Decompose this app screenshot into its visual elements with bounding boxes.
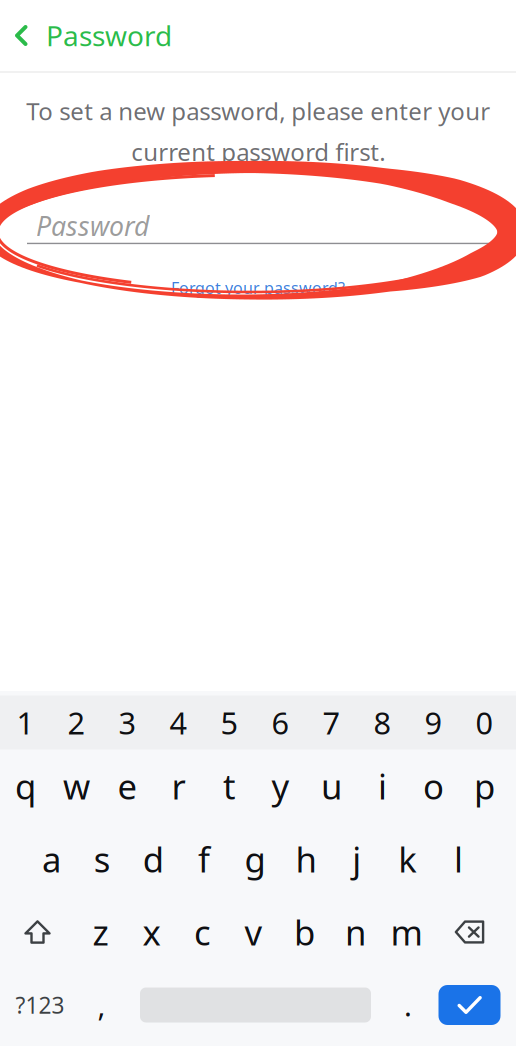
staticText: b: [294, 909, 315, 955]
button[interactable]: m: [381, 895, 432, 968]
button[interactable]: l: [433, 822, 484, 895]
button[interactable]: h: [280, 822, 331, 895]
staticText: 6: [271, 702, 289, 743]
button[interactable]: u: [306, 749, 357, 822]
staticText: q: [15, 763, 36, 809]
staticText: h: [295, 836, 316, 882]
staticText: l: [454, 836, 463, 882]
button[interactable]: 1: [0, 695, 51, 749]
staticText: i: [378, 763, 387, 809]
button[interactable]: v: [228, 895, 279, 968]
button[interactable]: 8: [357, 695, 408, 749]
button[interactable]: 3: [102, 695, 153, 749]
staticText: t: [223, 763, 236, 809]
staticText: k: [398, 836, 417, 882]
button[interactable]: a: [26, 822, 77, 895]
button[interactable]: Password: [0, 0, 516, 71]
button[interactable]: e: [102, 749, 153, 822]
button[interactable]: k: [382, 822, 433, 895]
button[interactable]: Forgot your password?: [171, 244, 345, 298]
staticText: r: [171, 763, 185, 809]
button[interactable]: .: [393, 968, 438, 1041]
staticText: a: [42, 836, 61, 882]
staticText: u: [321, 763, 342, 809]
button[interactable]: j: [331, 822, 382, 895]
button[interactable]: z: [75, 895, 126, 968]
button[interactable]: f: [179, 822, 230, 895]
button[interactable]: 4: [153, 695, 204, 749]
button[interactable]: Enter: [438, 968, 500, 1041]
staticText: v: [244, 909, 262, 955]
button[interactable]: Delete: [432, 895, 507, 968]
staticText: Forgot your password?: [171, 277, 345, 298]
staticText: p: [474, 763, 495, 809]
button[interactable]: 0: [459, 695, 510, 749]
button[interactable]: b: [279, 895, 330, 968]
staticText: ,: [97, 985, 105, 1024]
button[interactable]: ,: [85, 968, 129, 1041]
staticText: 4: [169, 702, 187, 743]
staticText: 2: [67, 702, 85, 743]
button[interactable]: 5: [204, 695, 255, 749]
button[interactable]: Shift: [0, 895, 75, 968]
button[interactable]: r: [153, 749, 204, 822]
button[interactable]: t: [204, 749, 255, 822]
staticText: e: [117, 763, 137, 809]
button[interactable]: Space: [129, 968, 393, 1041]
staticText: z: [92, 909, 108, 955]
staticText: f: [198, 836, 210, 882]
button[interactable]: x: [126, 895, 177, 968]
staticText: w: [63, 763, 90, 809]
staticText: c: [194, 909, 211, 955]
staticText: 3: [118, 702, 136, 743]
staticText: o: [423, 763, 444, 809]
staticText: y: [271, 763, 289, 809]
button[interactable]: n: [330, 895, 381, 968]
staticText: d: [143, 836, 164, 882]
staticText: 7: [322, 702, 340, 743]
staticText: m: [390, 909, 422, 955]
button[interactable]: p: [459, 749, 510, 822]
button[interactable]: i: [357, 749, 408, 822]
button[interactable]: 7: [306, 695, 357, 749]
button[interactable]: g: [230, 822, 280, 895]
staticText: Password: [36, 208, 149, 243]
button[interactable]: q: [0, 749, 51, 822]
button[interactable]: 9: [408, 695, 459, 749]
staticText: 9: [424, 702, 442, 743]
staticText: g: [244, 836, 265, 882]
staticText: 1: [16, 702, 34, 743]
staticText: x: [142, 909, 160, 955]
staticText: 8: [373, 702, 391, 743]
button[interactable]: 6: [255, 695, 306, 749]
button[interactable]: d: [128, 822, 179, 895]
staticText: ?123: [15, 990, 64, 1020]
button[interactable]: ?123: [6, 968, 85, 1041]
staticText: .: [404, 985, 412, 1024]
staticText: s: [94, 836, 111, 882]
staticText: 5: [220, 702, 238, 743]
button[interactable]: 2: [51, 695, 102, 749]
staticText: To set a new password, please enter your…: [26, 95, 490, 168]
staticText: Password: [46, 17, 172, 54]
button[interactable]: y: [255, 749, 306, 822]
button[interactable]: o: [408, 749, 459, 822]
button[interactable]: w: [51, 749, 102, 822]
button[interactable]: c: [177, 895, 228, 968]
staticText: n: [345, 909, 366, 955]
button[interactable]: s: [77, 822, 128, 895]
staticText: 0: [475, 702, 493, 743]
staticText: j: [352, 836, 361, 882]
